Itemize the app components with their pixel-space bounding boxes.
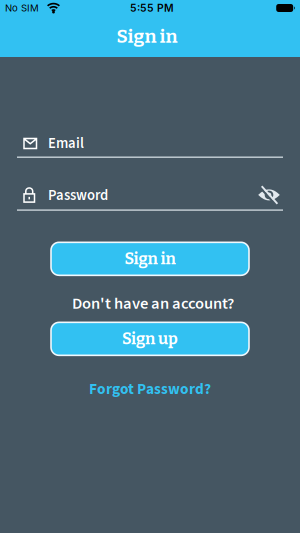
staticText: Don't have an account?: [72, 292, 234, 315]
staticText: Sign in: [116, 25, 177, 48]
staticText: Sign in: [124, 249, 175, 268]
button[interactable]: Sign up: [51, 322, 249, 355]
staticText: Password: [48, 185, 108, 206]
button[interactable]: Sign in: [51, 242, 249, 275]
staticText: 5:55 PM: [130, 2, 174, 14]
button[interactable]: Forgot Password?: [89, 378, 211, 400]
staticText: Sign up: [122, 329, 178, 348]
staticText: Forgot Password?: [89, 378, 211, 400]
button[interactable]: Show password: [258, 185, 280, 205]
staticText: No SIM: [5, 2, 39, 14]
staticText: Email: [48, 133, 84, 154]
